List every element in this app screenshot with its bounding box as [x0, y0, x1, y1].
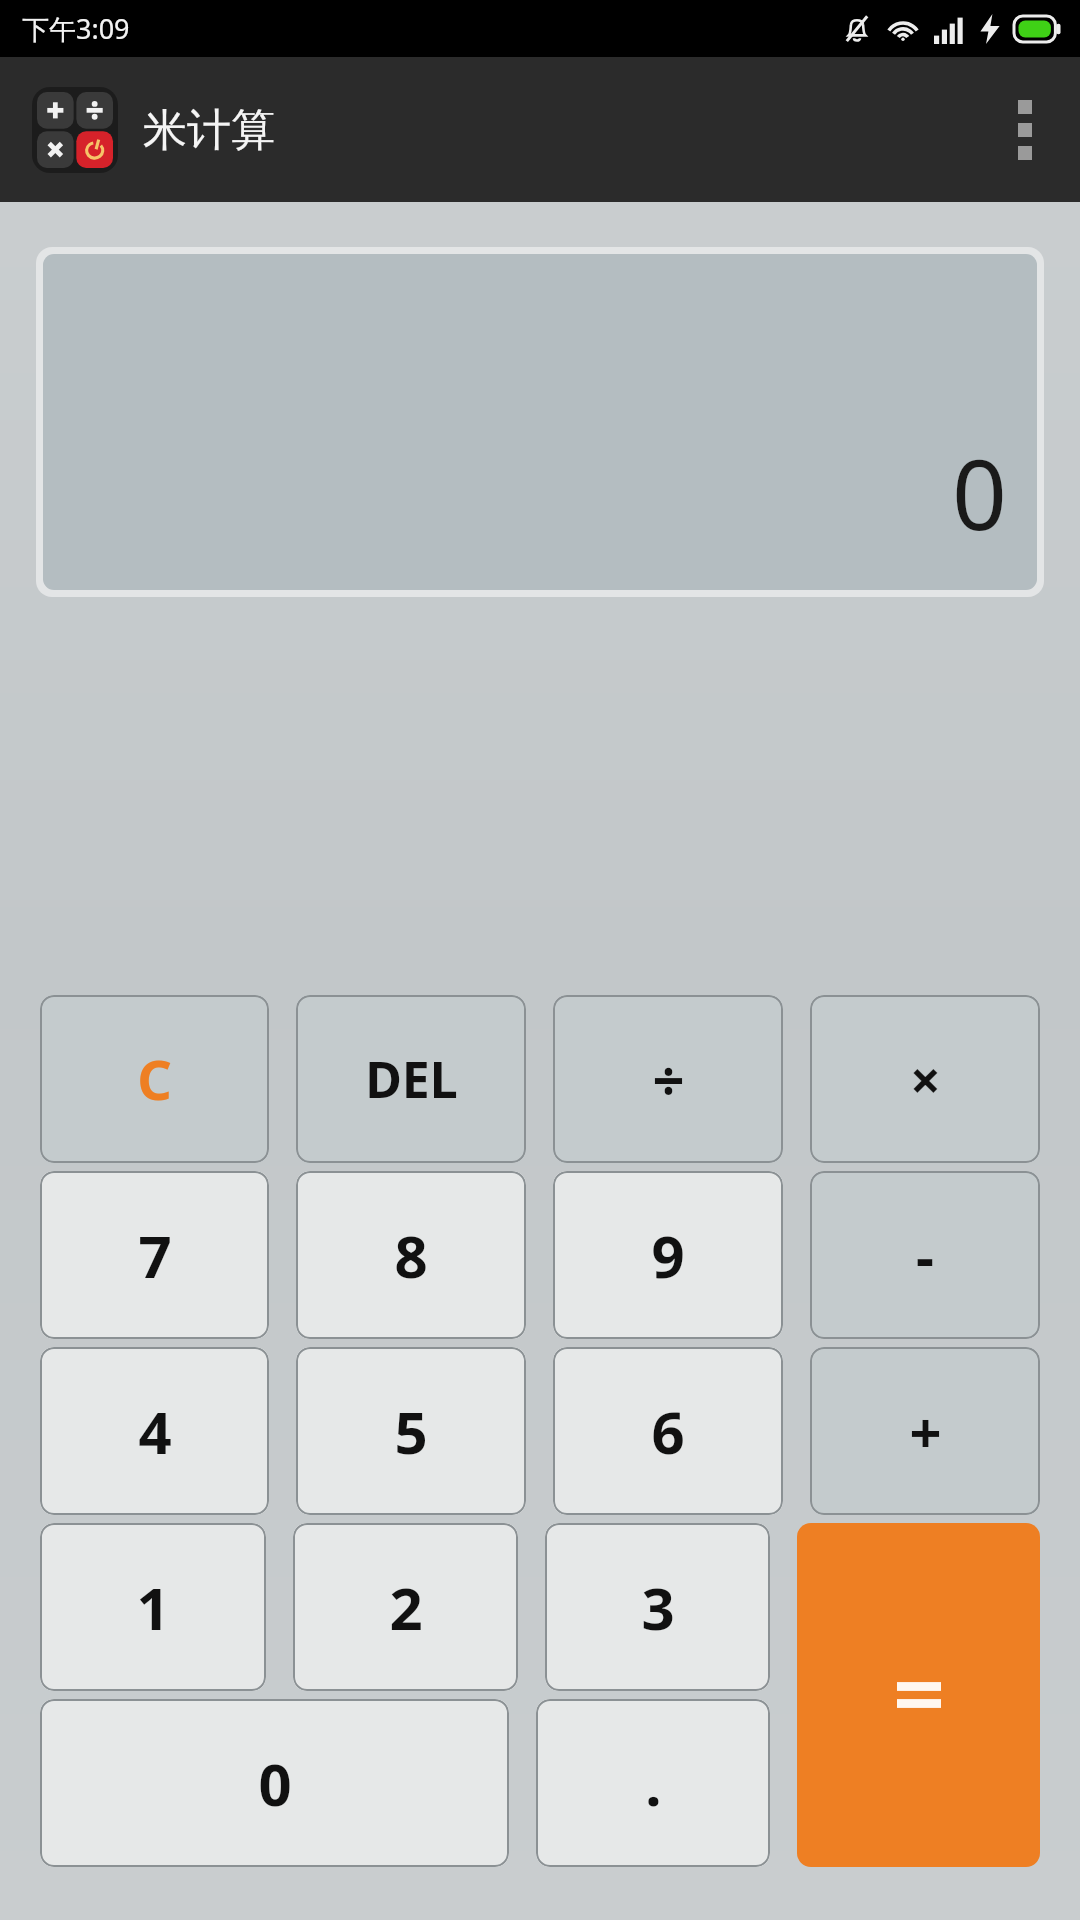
staticText: 米计算: [143, 103, 275, 158]
staticText: +: [909, 1393, 942, 1469]
staticText: 下午3:09: [22, 10, 130, 47]
staticText: 2: [389, 1568, 423, 1647]
button[interactable]: 9: [553, 1171, 783, 1339]
staticText: 4: [138, 1392, 172, 1471]
staticText: -: [916, 1217, 934, 1293]
button[interactable]: 4: [40, 1347, 269, 1515]
button[interactable]: Equals: [797, 1523, 1040, 1867]
button[interactable]: -: [810, 1171, 1040, 1339]
staticText: 1: [136, 1568, 170, 1647]
button[interactable]: 3: [545, 1523, 770, 1691]
button[interactable]: C: [40, 995, 269, 1163]
button[interactable]: 6: [553, 1347, 783, 1515]
staticText: 6: [651, 1392, 685, 1471]
button[interactable]: 1: [40, 1523, 266, 1691]
button[interactable]: App icon: [37, 92, 113, 168]
staticText: 0: [952, 427, 1007, 558]
button[interactable]: DEL: [296, 995, 526, 1163]
staticText: .: [645, 1744, 662, 1823]
button[interactable]: .: [536, 1699, 770, 1867]
button[interactable]: +: [810, 1347, 1040, 1515]
button[interactable]: 7: [40, 1171, 269, 1339]
staticText: DEL: [365, 1045, 458, 1113]
staticText: 3: [641, 1568, 675, 1647]
button[interactable]: 2: [293, 1523, 518, 1691]
staticText: 9: [651, 1216, 685, 1295]
staticText: ×: [910, 1042, 941, 1116]
button[interactable]: More options: [970, 57, 1080, 202]
staticText: 0: [258, 1744, 292, 1823]
staticText: ÷: [652, 1041, 685, 1117]
staticText: 7: [138, 1216, 172, 1295]
button[interactable]: ÷: [553, 995, 783, 1163]
button[interactable]: ×: [810, 995, 1040, 1163]
staticText: C: [137, 1042, 172, 1116]
button[interactable]: 5: [296, 1347, 526, 1515]
staticText: 5: [394, 1392, 428, 1471]
staticText: 8: [394, 1216, 428, 1295]
button[interactable]: 0: [43, 254, 1037, 590]
button[interactable]: 0: [40, 1699, 509, 1867]
button[interactable]: 8: [296, 1171, 526, 1339]
